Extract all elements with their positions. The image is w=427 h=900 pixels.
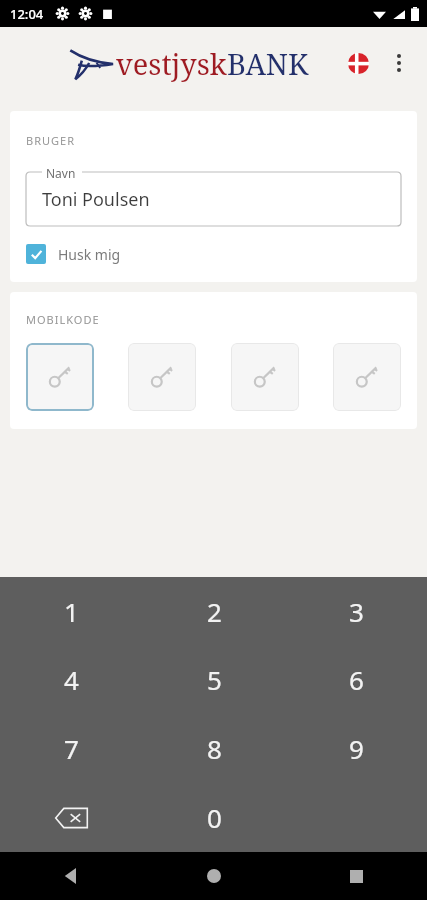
staticText: MOBILKODE xyxy=(26,312,100,327)
button[interactable]: 5 xyxy=(143,645,285,714)
button[interactable]: PIN digit xyxy=(231,343,299,411)
staticText: 3 xyxy=(349,594,364,629)
staticText: BANK xyxy=(227,44,309,83)
button[interactable]: Back xyxy=(0,852,143,900)
button[interactable]: Husk mig xyxy=(26,244,121,264)
button[interactable]: 7 xyxy=(0,714,143,783)
button[interactable]: 9 xyxy=(285,714,427,783)
staticText: 8 xyxy=(207,731,222,766)
button[interactable]: Backspace xyxy=(0,783,143,852)
staticText: 6 xyxy=(349,662,364,697)
staticText: Navn xyxy=(46,165,76,181)
staticText: vestjysk xyxy=(116,44,227,83)
button[interactable]: PIN digit xyxy=(128,343,196,411)
button[interactable]: 8 xyxy=(143,714,285,783)
button[interactable]: 6 xyxy=(285,645,427,714)
button[interactable]: 0 xyxy=(143,783,285,852)
staticText: 2 xyxy=(207,594,222,629)
staticText: 4 xyxy=(64,662,79,697)
button[interactable]: Recent apps xyxy=(285,852,427,900)
button[interactable]: 2 xyxy=(143,577,285,645)
button[interactable]: 4 xyxy=(0,645,143,714)
staticText: 7 xyxy=(64,731,79,766)
button[interactable]: 3 xyxy=(285,577,427,645)
staticText: BRUGER xyxy=(26,133,75,148)
staticText: Toni Poulsen xyxy=(42,187,150,212)
staticText: 5 xyxy=(207,662,222,697)
button[interactable]: More options xyxy=(379,43,419,83)
button[interactable]: PIN digit xyxy=(26,343,94,411)
staticText: 12:04 xyxy=(10,5,44,23)
staticText: 1 xyxy=(64,594,79,629)
staticText: 9 xyxy=(349,731,364,766)
button[interactable]: Language: Danish xyxy=(341,46,375,80)
button[interactable]: 1 xyxy=(0,577,143,645)
staticText: Husk mig xyxy=(58,245,121,264)
button[interactable]: Home xyxy=(143,852,285,900)
button[interactable]: PIN digit xyxy=(333,343,401,411)
staticText: 0 xyxy=(207,800,222,835)
